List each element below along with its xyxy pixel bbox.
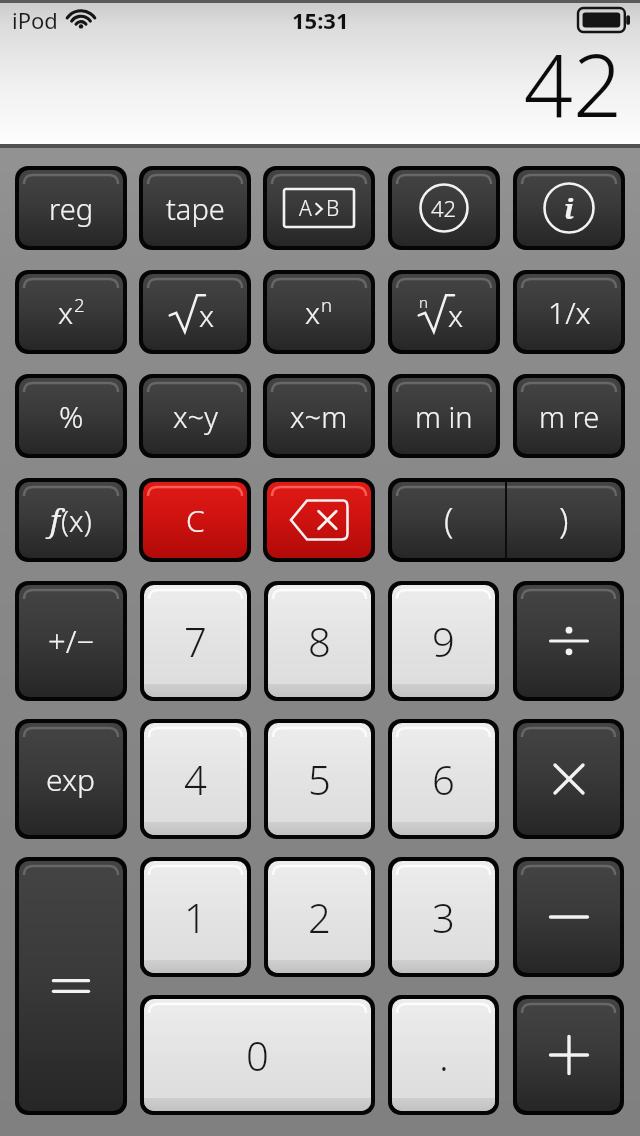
staticText: 2 <box>74 292 85 317</box>
staticText: x <box>199 295 215 336</box>
staticText: (x) <box>61 501 92 540</box>
staticText: 1/x <box>548 292 591 333</box>
staticText: x <box>305 292 321 333</box>
button[interactable]: 9 <box>388 581 499 701</box>
staticText: 5 <box>308 752 331 806</box>
button[interactable]: Convert A to B <box>263 166 375 250</box>
staticText: reg <box>49 189 94 228</box>
staticText: ) <box>559 497 569 543</box>
button[interactable]: 0 <box>140 995 375 1115</box>
staticText: n <box>419 292 428 312</box>
button[interactable]: multiply <box>513 719 624 839</box>
button[interactable]: 7 <box>140 581 251 701</box>
button[interactable]: 2 <box>264 857 375 977</box>
staticText: 42 <box>431 193 457 223</box>
staticText: x <box>448 295 464 336</box>
staticText: 6 <box>432 752 455 806</box>
button[interactable]: Info <box>513 166 625 250</box>
button[interactable]: x squared <box>15 270 127 354</box>
staticText: m re <box>539 397 600 436</box>
staticText: +/− <box>48 620 95 662</box>
button[interactable]: 4 <box>140 719 251 839</box>
button[interactable]: divide <box>513 581 624 701</box>
button[interactable]: tape <box>139 166 251 250</box>
staticText: i <box>564 189 574 227</box>
button[interactable]: 6 <box>388 719 499 839</box>
staticText: B <box>326 194 340 223</box>
button[interactable]: reg <box>15 166 127 250</box>
staticText: 8 <box>308 614 331 668</box>
staticText: . <box>439 1028 449 1082</box>
staticText: iPod <box>12 5 58 35</box>
staticText: x <box>58 292 74 333</box>
staticText: 3 <box>432 890 455 944</box>
button[interactable]: plus <box>513 995 624 1115</box>
button[interactable]: 1 <box>140 857 251 977</box>
button[interactable]: memory in <box>388 374 500 458</box>
button[interactable]: decimal point <box>388 995 499 1115</box>
button[interactable]: Backspace <box>263 478 375 562</box>
button[interactable]: one over x <box>513 270 625 354</box>
button[interactable]: percent <box>15 374 127 458</box>
button[interactable]: close parenthesis <box>507 482 621 558</box>
button[interactable]: 8 <box>264 581 375 701</box>
staticText: ( <box>444 497 454 543</box>
button[interactable]: Constant 42 <box>388 166 500 250</box>
staticText: 42 <box>523 25 622 142</box>
button[interactable]: plus minus <box>15 581 127 701</box>
staticText: 4 <box>184 752 207 806</box>
staticText: f <box>50 499 60 541</box>
staticText: x~m <box>290 397 348 436</box>
button[interactable]: minus <box>513 857 624 977</box>
staticText: n <box>321 292 333 317</box>
button[interactable]: functions <box>15 478 127 562</box>
button[interactable]: 3 <box>388 857 499 977</box>
button[interactable]: swap x and memory <box>263 374 375 458</box>
staticText: % <box>59 396 84 437</box>
button[interactable]: swap x and y <box>139 374 251 458</box>
button[interactable]: equals <box>15 857 127 1115</box>
button[interactable]: 5 <box>264 719 375 839</box>
button[interactable]: open parenthesis <box>392 482 505 558</box>
staticText: exp <box>46 759 96 800</box>
staticText: 0 <box>246 1028 269 1082</box>
button[interactable]: Clear <box>139 478 251 562</box>
button[interactable]: x to the n <box>263 270 375 354</box>
button[interactable]: nth root of x <box>388 270 500 354</box>
button[interactable]: square root of x <box>139 270 251 354</box>
staticText: 2 <box>308 890 331 944</box>
staticText: m in <box>415 397 473 436</box>
staticText: x~y <box>173 397 218 436</box>
staticText: 9 <box>432 614 455 668</box>
staticText: tape <box>166 189 225 228</box>
button[interactable]: exponent <box>15 719 127 839</box>
button[interactable]: memory recall <box>513 374 625 458</box>
staticText: 1 <box>184 890 207 944</box>
staticText: 15:31 <box>292 5 349 35</box>
staticText: C <box>186 500 205 541</box>
staticText: 7 <box>184 614 207 668</box>
staticText: A <box>299 194 312 223</box>
